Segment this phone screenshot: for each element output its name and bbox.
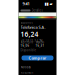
staticText: 16,06 [20,44,29,47]
staticText: Comprar [28,55,46,61]
staticText: Acciones [20,21,32,24]
button[interactable]: Menu [20,9,30,11]
staticText: Apertura [20,40,32,44]
button[interactable]: Comprar [21,55,53,60]
staticText: Noticias [20,65,30,69]
staticText: Detalles [31,9,42,12]
staticText: Telefonica S.A. [20,25,45,30]
staticText: Maximo [35,40,44,44]
staticText: +0,18 (1,12 %) [20,39,42,42]
staticText: 16,31 [35,44,44,47]
staticText: Resumen [20,71,33,74]
staticText: Disponible [20,48,36,52]
staticText: 9:41 [22,1,29,6]
staticText: 16,24 [20,30,38,39]
staticText: ▮▮ ▰ [44,1,52,6]
